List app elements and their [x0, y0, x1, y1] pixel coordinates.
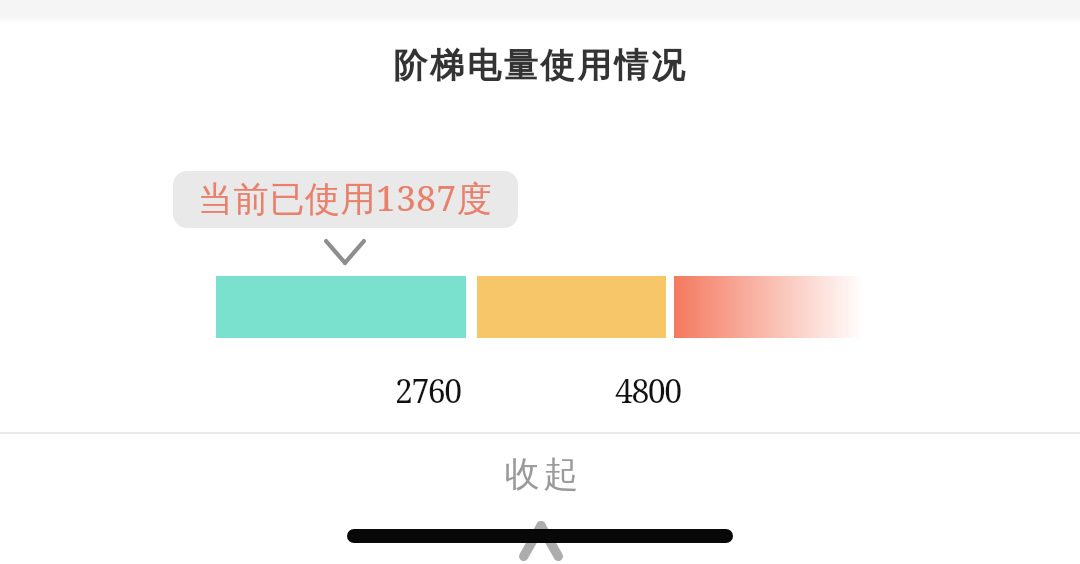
staticText: 当前已使用1387度	[198, 174, 493, 222]
button[interactable]: 当前已使用1387度	[173, 171, 518, 228]
staticText: 收起	[503, 452, 580, 496]
button[interactable]: Tier 3 usage	[674, 276, 864, 338]
other: Current usage marker	[324, 239, 366, 265]
staticText: 4800	[615, 369, 681, 413]
other: Collapse	[519, 521, 563, 561]
staticText: 阶梯电量使用情况	[393, 44, 688, 87]
staticText: 2760	[395, 369, 461, 413]
button[interactable]: 收起	[0, 434, 1080, 524]
